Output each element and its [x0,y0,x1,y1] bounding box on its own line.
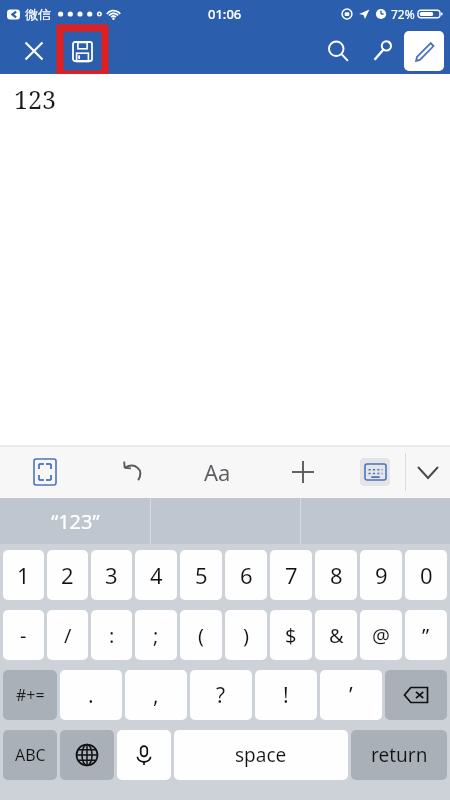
staticText: @ [372,622,390,649]
staticText: - [20,622,27,649]
staticText: 8 [330,560,343,590]
staticText: return [371,742,428,768]
button[interactable]: Dictate [117,730,171,780]
staticText: 3 [105,560,118,590]
button[interactable]: 2 [47,550,88,600]
button[interactable]: ) [225,610,267,660]
staticText: space [235,742,287,768]
staticText: 123 [14,82,56,116]
staticText: ; [153,622,159,649]
button[interactable]: #+= [3,670,57,720]
button[interactable]: ’ [320,670,382,720]
button[interactable]: Hide keyboard [406,446,450,498]
button[interactable]: / [47,610,88,660]
button[interactable]: ABC [3,730,57,780]
staticText: ? [216,681,226,710]
button[interactable]: Keyboard [345,446,405,498]
staticText: 2 [61,560,74,590]
button[interactable]: 7 [270,550,312,600]
staticText: 微信 [25,6,51,22]
button[interactable]: 0 [405,550,447,600]
staticText: #+= [16,684,45,706]
button[interactable]: 3 [91,550,132,600]
button[interactable]: Change language [60,730,114,780]
button[interactable]: : [91,610,132,660]
button[interactable]: return [351,730,447,780]
button[interactable]: . [60,670,122,720]
button[interactable]: ; [135,610,177,660]
button[interactable]: - [3,610,44,660]
button[interactable]: 9 [360,550,402,600]
button[interactable]: Search [316,29,360,73]
button[interactable]: ? [190,670,252,720]
button[interactable]: ! [255,670,317,720]
staticText: 5 [195,560,208,590]
staticText: 6 [240,560,253,590]
staticText: 01:06 [208,5,242,23]
button[interactable]: 8 [315,550,357,600]
button[interactable]: Backspace [385,670,447,720]
staticText: 4 [150,560,163,590]
button[interactable]: Close [12,29,56,73]
staticText: $ [285,622,297,649]
button[interactable]: Select [0,446,90,498]
button[interactable]: Save [60,28,105,74]
staticText: “123” [51,508,100,535]
button[interactable]: Insert [260,446,345,498]
staticText: 0 [420,560,433,590]
button[interactable]: Tools [360,29,404,73]
button[interactable]: 1 [3,550,44,600]
staticText: : [109,622,115,649]
button[interactable]: ( [180,610,222,660]
staticText: 9 [375,560,388,590]
button[interactable]: 4 [135,550,177,600]
staticText: ABC [15,744,46,766]
staticText: 72% [391,6,415,22]
staticText: Aa [204,457,231,487]
button[interactable]: , [125,670,187,720]
button[interactable]: ” [405,610,447,660]
staticText: . [88,681,94,710]
button[interactable]: Edit [404,31,444,71]
button[interactable]: 6 [225,550,267,600]
button[interactable]: “123” [0,498,150,544]
button[interactable]: Undo [90,446,175,498]
button[interactable]: Format [175,446,260,498]
button[interactable]: @ [360,610,402,660]
button[interactable]: 5 [180,550,222,600]
button[interactable]: & [315,610,357,660]
button[interactable]: space [174,730,348,780]
button[interactable]: $ [270,610,312,660]
staticText: & [329,622,344,649]
staticText: 1 [17,560,30,590]
staticText: ! [283,681,289,710]
staticText: ’ [349,681,353,710]
staticText: 7 [285,560,298,590]
staticText: / [64,622,72,649]
staticText: , [153,681,159,710]
staticText: ) [243,622,249,649]
staticText: ” [422,622,430,649]
staticText: ( [198,622,204,649]
